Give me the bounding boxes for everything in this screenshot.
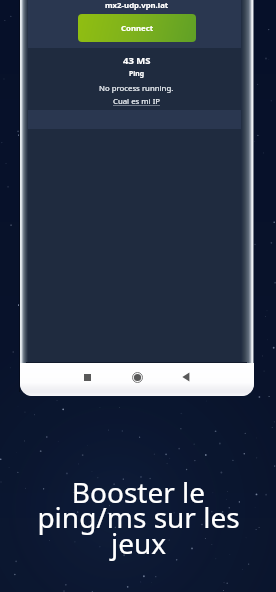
staticText: Connect (121, 23, 154, 34)
button[interactable]: Cual es mi IP (113, 96, 161, 107)
staticText: Ping (129, 69, 144, 78)
button[interactable]: Connect (78, 14, 196, 42)
staticText: No process running. (99, 83, 174, 94)
button[interactable]: Home (126, 366, 148, 388)
staticText: mx2-udp.vpn.lat (105, 0, 169, 11)
button[interactable]: Back (175, 366, 197, 388)
staticText: Cual es mi IP (113, 96, 161, 107)
staticText: Booster le ping/ms sur les jeux (37, 473, 240, 562)
button[interactable]: Recent apps (76, 366, 98, 388)
staticText: 43 MS (123, 54, 151, 67)
